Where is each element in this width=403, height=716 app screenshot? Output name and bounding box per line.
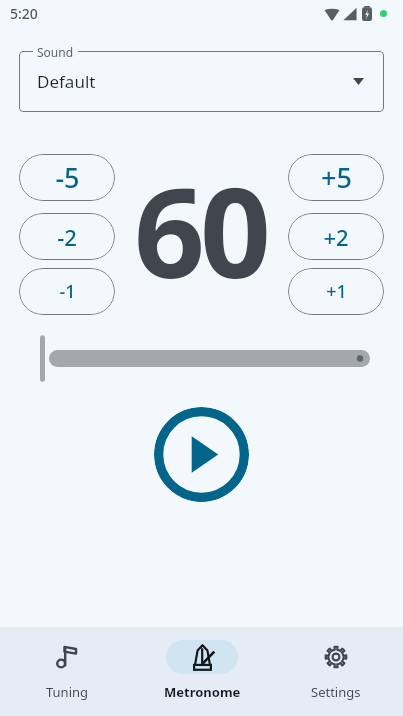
staticText: 5:20: [10, 4, 38, 23]
staticText: +1: [326, 279, 347, 304]
button[interactable]: -2: [19, 213, 115, 260]
staticText: 60: [134, 145, 266, 314]
button[interactable]: -1: [19, 268, 115, 315]
staticText: +2: [323, 222, 349, 252]
button[interactable]: Play: [154, 407, 249, 502]
button[interactable]: +1: [288, 268, 384, 315]
staticText: Settings: [311, 683, 361, 701]
button[interactable]: +2: [288, 213, 384, 260]
button[interactable]: Metronome: [146, 627, 258, 716]
staticText: -2: [57, 222, 77, 252]
button[interactable]: Default: [19, 51, 384, 112]
button[interactable]: Tempo slider: [0, 341, 403, 388]
button[interactable]: -5: [19, 154, 115, 201]
staticText: Metronome: [164, 683, 241, 701]
staticText: Sound: [37, 44, 74, 60]
staticText: -5: [55, 159, 80, 196]
button[interactable]: +5: [288, 154, 384, 201]
staticText: Tuning: [46, 683, 89, 701]
button[interactable]: Tuning: [11, 627, 123, 716]
staticText: +5: [321, 159, 352, 196]
staticText: -1: [59, 279, 76, 304]
button[interactable]: Settings: [280, 627, 392, 716]
staticText: Default: [37, 70, 96, 93]
